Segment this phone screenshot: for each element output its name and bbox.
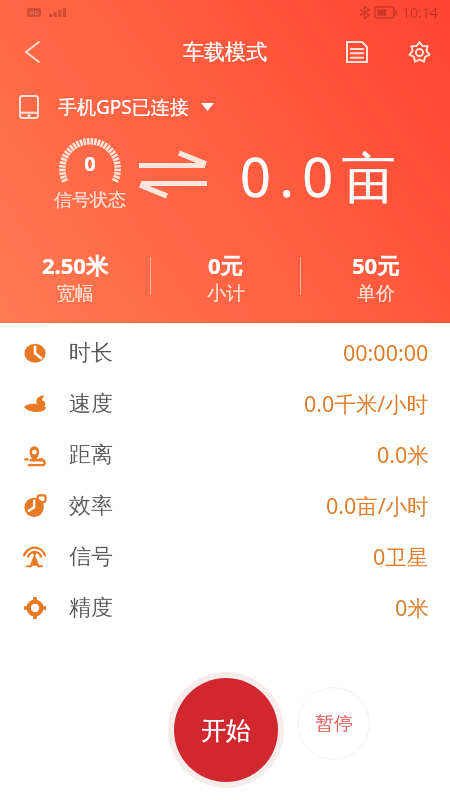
button[interactable]: 开始 bbox=[174, 678, 278, 782]
button[interactable]: 效率 bbox=[0, 480, 450, 531]
staticText: 距离 bbox=[69, 441, 113, 469]
button[interactable]: 速度 bbox=[0, 378, 450, 429]
staticText: 0.0米 bbox=[377, 440, 429, 469]
staticText: 精度 bbox=[69, 594, 113, 622]
staticText: 0.0亩/小时 bbox=[326, 491, 429, 520]
button[interactable]: 时长 bbox=[0, 327, 450, 378]
staticText: 单价 bbox=[357, 282, 395, 302]
staticText: 效率 bbox=[69, 492, 113, 520]
staticText: 速度 bbox=[69, 390, 113, 418]
button[interactable]: 距离 bbox=[0, 429, 450, 480]
staticText: 0 bbox=[58, 150, 122, 177]
staticText: 信号 bbox=[69, 543, 113, 571]
button[interactable]: 精度 bbox=[0, 582, 450, 633]
staticText: 开始 bbox=[201, 715, 251, 746]
staticText: 0.0千米/小时 bbox=[304, 389, 429, 418]
staticText: 小计 bbox=[207, 282, 245, 302]
button[interactable]: Records bbox=[334, 24, 379, 80]
staticText: 0.0亩 bbox=[240, 139, 405, 213]
staticText: 手机GPS已连接 bbox=[58, 94, 189, 120]
staticText: 0卫星 bbox=[373, 542, 429, 571]
staticText: 信号状态 bbox=[50, 189, 130, 212]
button[interactable]: 信号 bbox=[0, 531, 450, 582]
staticText: HD bbox=[30, 9, 39, 17]
staticText: 0米 bbox=[395, 593, 429, 622]
staticText: 50元 bbox=[352, 250, 400, 280]
staticText: 00:00:00 bbox=[343, 338, 429, 367]
button[interactable]: 手机GPS已连接 bbox=[20, 92, 214, 122]
staticText: 暂停 bbox=[315, 712, 353, 736]
staticText: 时长 bbox=[69, 339, 113, 367]
staticText: 0元 bbox=[208, 250, 243, 280]
button[interactable]: Settings bbox=[397, 24, 442, 80]
button[interactable]: 暂停 bbox=[297, 687, 370, 760]
staticText: 10:14 bbox=[402, 3, 438, 22]
staticText: 2.50米 bbox=[42, 250, 108, 280]
staticText: 车载模式 bbox=[183, 39, 267, 65]
staticText: 宽幅 bbox=[56, 282, 94, 302]
button[interactable]: Back bbox=[7, 27, 57, 77]
